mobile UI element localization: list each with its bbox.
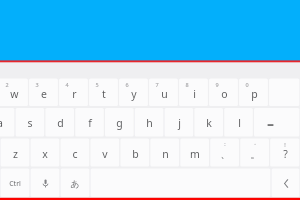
staticText: ： xyxy=(222,141,228,148)
staticText: i xyxy=(193,87,196,101)
staticText: a xyxy=(0,116,3,130)
button[interactable]: n xyxy=(150,139,180,167)
button[interactable]: a xyxy=(0,108,15,137)
button[interactable]: Voice input xyxy=(30,169,60,198)
staticText: 。 xyxy=(250,148,261,161)
staticText: c xyxy=(72,147,78,161)
button[interactable]: z xyxy=(0,139,30,167)
button[interactable]: f xyxy=(75,108,105,137)
button[interactable]: h xyxy=(134,108,164,137)
staticText: ! xyxy=(284,141,286,148)
button[interactable]: k xyxy=(194,108,224,137)
staticText: 6 xyxy=(125,81,129,88)
staticText: y xyxy=(131,87,137,101)
staticText: k xyxy=(206,116,212,130)
button[interactable]: Space xyxy=(90,169,271,198)
staticText: 4 xyxy=(65,81,69,88)
button[interactable]: ! xyxy=(270,139,300,167)
staticText: h xyxy=(146,116,153,130)
button[interactable]: s xyxy=(15,108,45,137)
staticText: r xyxy=(72,87,77,101)
staticText: t xyxy=(102,87,106,101)
staticText: 2 xyxy=(5,81,9,88)
staticText: 、 xyxy=(220,148,231,161)
staticText: u xyxy=(161,87,168,101)
button[interactable]: m xyxy=(180,139,210,167)
button[interactable]: 3 xyxy=(29,79,59,107)
staticText: f xyxy=(88,116,92,130)
button[interactable]: v xyxy=(90,139,120,167)
button[interactable]: 5 xyxy=(89,79,119,107)
button[interactable]: l xyxy=(224,108,254,137)
staticText: v xyxy=(102,147,108,161)
staticText: 3 xyxy=(35,81,39,88)
staticText: n xyxy=(162,147,169,161)
staticText: 9 xyxy=(215,81,219,88)
button[interactable]: d xyxy=(45,108,75,137)
button[interactable]: 2 xyxy=(0,79,29,107)
staticText: ? xyxy=(283,147,288,161)
staticText: 0 xyxy=(245,81,249,88)
button[interactable]: 8 xyxy=(179,79,209,107)
staticText: s xyxy=(27,116,33,130)
staticText: b xyxy=(132,147,139,161)
button[interactable]: b xyxy=(120,139,150,167)
staticText: 5 xyxy=(95,81,99,88)
staticText: o xyxy=(221,87,228,101)
button[interactable]: あ xyxy=(60,169,90,198)
button[interactable]: ： xyxy=(210,139,240,167)
staticText: w xyxy=(10,87,19,101)
staticText: m xyxy=(190,147,200,161)
staticText: p xyxy=(251,87,258,101)
button[interactable]: Previous xyxy=(271,169,300,198)
button[interactable]: 4 xyxy=(59,79,89,107)
staticText: 7 xyxy=(155,81,159,88)
staticText: あ xyxy=(70,178,80,189)
staticText: l xyxy=(238,116,241,130)
button[interactable]: 7 xyxy=(149,79,179,107)
staticText: e xyxy=(41,87,47,101)
staticText: ・ xyxy=(252,141,258,148)
button[interactable]: ・ xyxy=(240,139,270,167)
button[interactable]: x xyxy=(30,139,60,167)
staticText: d xyxy=(57,116,64,130)
button[interactable]: Ctrl xyxy=(0,169,30,198)
button[interactable]: c xyxy=(60,139,90,167)
button[interactable]: g xyxy=(104,108,134,137)
staticText: g xyxy=(116,116,123,130)
button[interactable]: j xyxy=(164,108,194,137)
staticText: x xyxy=(42,147,48,161)
button[interactable]: 0 xyxy=(239,79,269,107)
button[interactable] xyxy=(253,108,300,137)
button[interactable]: 6 xyxy=(119,79,149,107)
button[interactable]: 9 xyxy=(209,79,239,107)
staticText: Ctrl xyxy=(9,179,21,189)
staticText: z xyxy=(13,147,18,161)
staticText: j xyxy=(178,116,181,130)
staticText: 8 xyxy=(185,81,189,88)
